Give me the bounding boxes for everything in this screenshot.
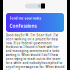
button[interactable]: Send me your notes <box>3 12 67 32</box>
staticText: Confessions <box>9 23 36 29</box>
staticText: Good day Sir W. I'm Sean Kurl. I've been… <box>5 33 64 70</box>
staticText: Send me your notes <box>9 16 41 20</box>
